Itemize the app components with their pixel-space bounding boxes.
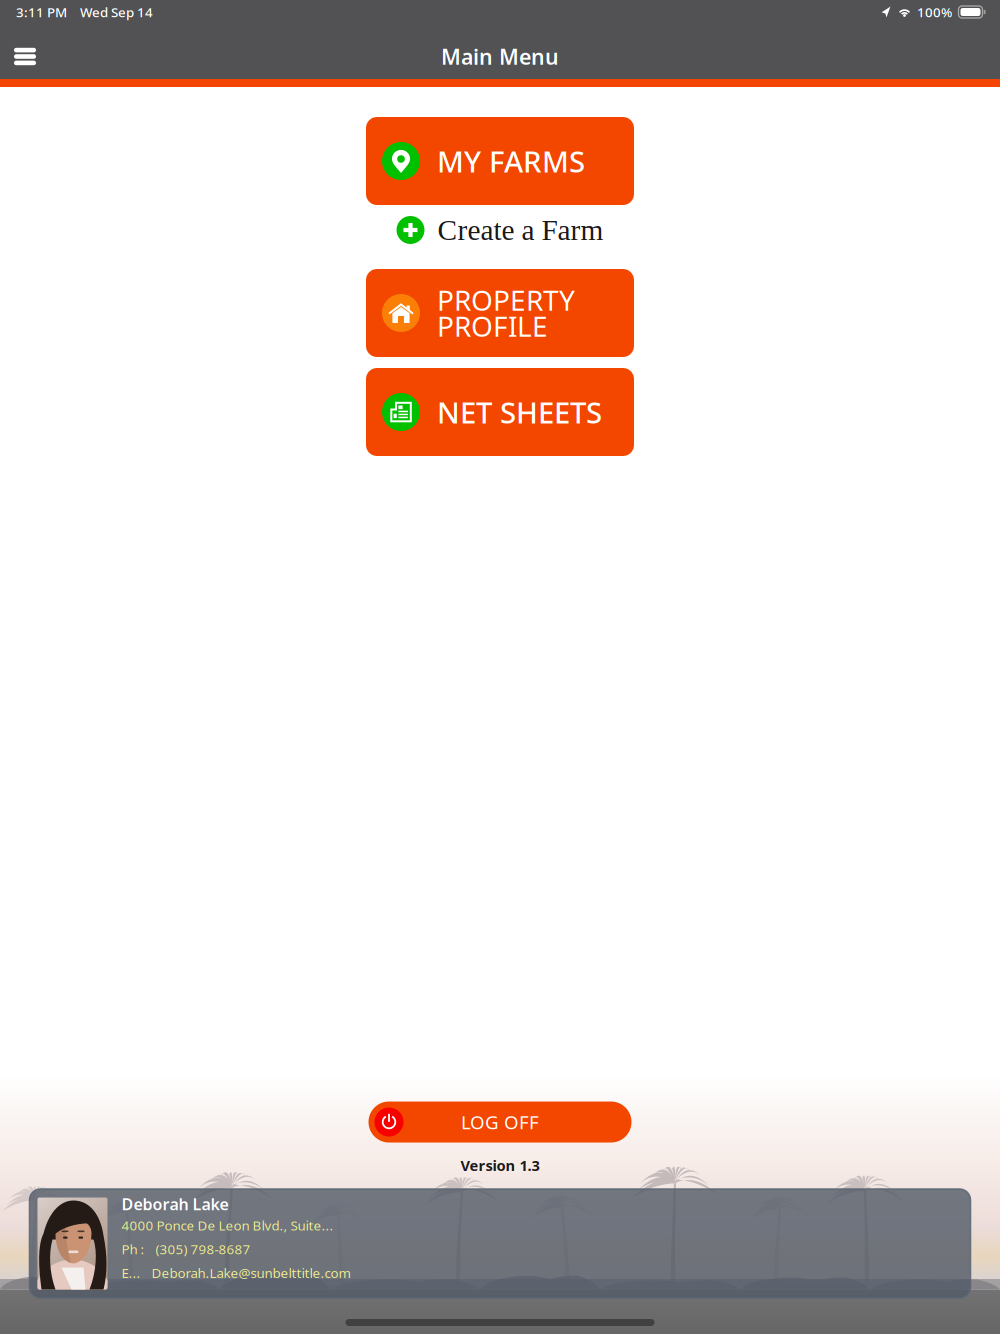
- staticText: 100%: [917, 3, 952, 21]
- staticText: LOG OFF: [461, 1110, 539, 1134]
- staticText: PROPERTY: [437, 281, 575, 319]
- button[interactable]: Deborah Lake: [29, 1189, 970, 1298]
- staticText: Version 1.3: [460, 1155, 539, 1175]
- staticText: Ph :: [121, 1240, 144, 1258]
- staticText: E...: [121, 1264, 140, 1282]
- button[interactable]: MY FARMS: [366, 117, 634, 205]
- button[interactable]: PROPERTY: [366, 269, 634, 357]
- staticText: Main Menu: [441, 42, 559, 71]
- button[interactable]: Create a Farm: [396, 206, 603, 254]
- staticText: PROFILE: [437, 307, 548, 345]
- button[interactable]: LOG OFF: [368, 1101, 631, 1142]
- staticText: NET SHEETS: [437, 392, 602, 431]
- staticText: Wed Sep 14: [80, 3, 153, 21]
- staticText: Create a Farm: [437, 214, 603, 246]
- button[interactable]: NET SHEETS: [366, 368, 634, 456]
- staticText: 4000 Ponce De Leon Blvd., Suite...: [121, 1217, 333, 1234]
- staticText: Deborah.Lake@sunbelttitle.com: [151, 1264, 350, 1282]
- button[interactable]: Menu: [3, 26, 47, 76]
- staticText: (305) 798-8687: [155, 1240, 250, 1258]
- staticText: Deborah Lake: [121, 1193, 228, 1214]
- staticText: MY FARMS: [437, 141, 585, 180]
- staticText: 3:11 PM: [16, 3, 67, 21]
